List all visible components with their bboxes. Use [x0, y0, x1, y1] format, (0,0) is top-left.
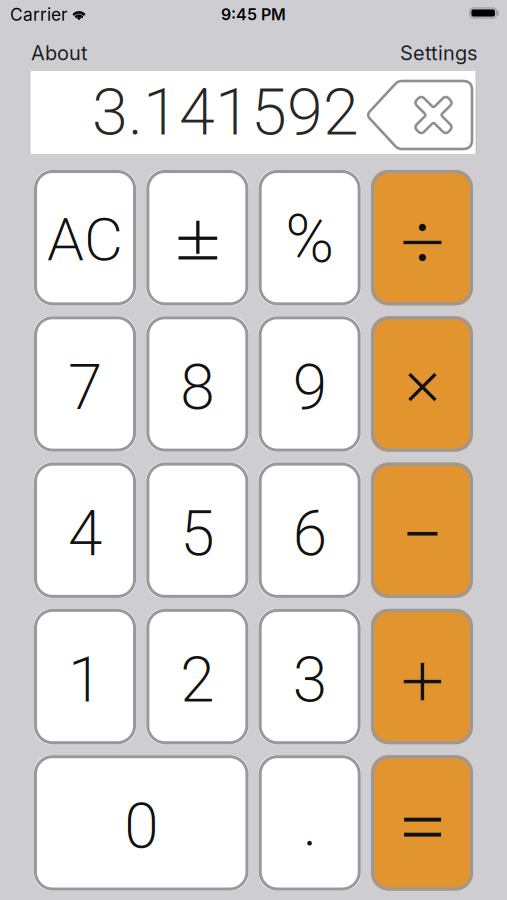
- button[interactable]: 8: [146, 316, 248, 452]
- staticText: 0: [124, 791, 158, 862]
- button[interactable]: Settings: [400, 41, 477, 65]
- staticText: 3.141592: [92, 76, 359, 149]
- staticText: 9:45 PM: [221, 5, 286, 24]
- button[interactable]: Minus: [371, 463, 473, 598]
- staticText: .: [303, 789, 317, 860]
- button[interactable]: All clear: [34, 170, 136, 305]
- staticText: 2: [180, 645, 214, 716]
- staticText: 1: [68, 645, 102, 716]
- staticText: 3: [293, 645, 327, 716]
- staticText: 4: [68, 498, 102, 569]
- button[interactable]: 9: [259, 316, 361, 452]
- button[interactable]: 7: [34, 316, 136, 452]
- staticText: Settings: [400, 41, 477, 65]
- button[interactable]: 3: [259, 609, 361, 744]
- button[interactable]: 2: [146, 609, 248, 744]
- staticText: AC: [47, 205, 123, 274]
- button[interactable]: Plus: [371, 609, 473, 744]
- staticText: 7: [68, 352, 102, 423]
- button[interactable]: Plus minus: [146, 170, 248, 305]
- button[interactable]: Percent: [259, 170, 361, 305]
- button[interactable]: 5: [146, 463, 248, 598]
- button[interactable]: 4: [34, 463, 136, 598]
- button[interactable]: Multiply: [371, 316, 473, 452]
- button[interactable]: Equals: [371, 755, 473, 890]
- button[interactable]: Decimal point: [259, 755, 361, 890]
- button[interactable]: Backspace: [365, 79, 474, 150]
- button[interactable]: Divide: [371, 170, 473, 305]
- staticText: About: [31, 41, 88, 65]
- staticText: 5: [180, 498, 214, 569]
- button[interactable]: 0: [34, 755, 248, 890]
- button[interactable]: 6: [259, 463, 361, 598]
- staticText: 8: [180, 352, 214, 423]
- button[interactable]: 1: [34, 609, 136, 744]
- staticText: %: [285, 202, 334, 277]
- button[interactable]: About: [31, 41, 88, 65]
- staticText: Carrier: [10, 4, 68, 25]
- staticText: 9: [293, 352, 327, 423]
- staticText: 6: [293, 498, 327, 569]
